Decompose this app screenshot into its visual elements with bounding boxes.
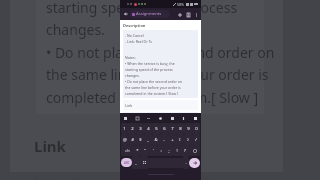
staticText: ? <box>184 148 186 154</box>
button[interactable]: Keyboard tool <box>170 116 175 121</box>
staticText: https://www.example.com/abc <box>34 173 221 180</box>
staticText: * <box>136 148 139 154</box>
staticText: • When the service is busy, the <box>125 61 175 66</box>
staticText: - No Cancel <box>125 33 144 38</box>
staticText: Description <box>123 23 146 28</box>
button[interactable]: 2 <box>128 123 136 134</box>
staticText: , <box>135 160 137 166</box>
button[interactable]: / <box>192 134 200 145</box>
staticText: 0 <box>195 126 198 132</box>
staticText: changes. <box>46 20 105 39</box>
button[interactable]: + <box>168 134 176 145</box>
staticText: ( <box>179 137 181 143</box>
staticText: # <box>131 137 134 143</box>
button[interactable]: Keyboard tool <box>181 116 186 121</box>
button[interactable]: ( <box>176 134 184 145</box>
staticText: $ <box>139 137 142 143</box>
button[interactable]: 1 <box>121 123 128 134</box>
staticText: starting speed of the process <box>46 0 238 17</box>
staticText: completed in the system.[ Slow ] <box>46 88 259 107</box>
button[interactable]: Save <box>184 10 193 19</box>
button[interactable]: , <box>132 156 140 169</box>
staticText: the same line before your order is <box>125 85 181 90</box>
button[interactable]: $ <box>136 134 144 145</box>
button[interactable]: 4 <box>144 123 152 134</box>
button[interactable]: More options <box>193 11 200 18</box>
button[interactable]: 7 <box>168 123 176 134</box>
staticText: starting speed of the process <box>125 67 173 72</box>
button[interactable]: Keyboard tool <box>123 116 128 121</box>
button[interactable]: Assignments <box>130 10 170 18</box>
button[interactable]: Back <box>122 10 130 18</box>
staticText: 5 <box>155 126 158 132</box>
button[interactable]: . <box>183 156 189 169</box>
button[interactable]: 5 <box>152 123 160 134</box>
button[interactable]: ABC <box>121 158 132 167</box>
button[interactable]: Add <box>175 10 184 19</box>
staticText: - <box>163 137 165 143</box>
button[interactable]: 6 <box>160 123 168 134</box>
button[interactable]: ; <box>165 145 173 156</box>
staticText: @ <box>123 137 127 143</box>
button[interactable]: ? <box>181 145 189 156</box>
staticText: ) <box>187 137 189 143</box>
button[interactable]: Keyboard tool <box>146 116 151 121</box>
staticText: ; <box>168 148 170 154</box>
button[interactable]: @ <box>121 134 128 145</box>
staticText: 58% <box>177 2 185 7</box>
staticText: + <box>171 137 174 143</box>
button[interactable]: =\< <box>121 145 133 156</box>
button[interactable]: Enter <box>189 158 200 168</box>
staticText: the same line before your order is <box>46 65 269 84</box>
staticText: changes. <box>125 73 140 78</box>
button[interactable]: ) <box>184 134 192 145</box>
button[interactable]: 0 <box>192 123 200 134</box>
staticText: - Link: Reel Dr Ts <box>125 39 152 44</box>
staticText: / <box>195 137 197 143</box>
staticText: 6 <box>163 126 166 132</box>
button[interactable]: Emoji <box>140 156 148 169</box>
button[interactable]: Keyboard tool <box>193 116 198 121</box>
staticText: 1 <box>123 126 126 132</box>
staticText: Link <box>125 103 133 108</box>
button[interactable]: # <box>128 134 136 145</box>
button[interactable]: & <box>152 134 160 145</box>
button[interactable]: ! <box>173 145 181 156</box>
staticText: Notes: <box>125 55 136 60</box>
staticText: 9 <box>187 126 190 132</box>
button[interactable]: 3 <box>136 123 144 134</box>
staticText: ABC <box>124 161 130 165</box>
staticText: ' <box>153 148 154 154</box>
staticText: =\< <box>125 149 130 153</box>
button[interactable]: Keyboard tool <box>158 116 163 121</box>
staticText: 4 <box>147 126 150 132</box>
staticText: Link <box>34 136 66 156</box>
staticText: • Do not place the second order on <box>46 43 275 62</box>
staticText: " <box>144 148 146 154</box>
button[interactable]: ' <box>149 145 157 156</box>
button[interactable]: : <box>157 145 165 156</box>
staticText: Assignments <box>136 11 162 17</box>
staticText: . <box>185 160 187 166</box>
staticText: 3 <box>139 126 142 132</box>
button[interactable]: - <box>160 134 168 145</box>
staticText: 7 <box>171 126 174 132</box>
staticText: 8 <box>179 126 182 132</box>
button[interactable]: " <box>141 145 149 156</box>
staticText: _ <box>147 137 149 143</box>
button[interactable]: * <box>133 145 141 156</box>
staticText: : <box>160 148 162 154</box>
button[interactable]: _ <box>144 134 152 145</box>
button[interactable]: Backspace <box>189 145 200 156</box>
staticText: completed in the system.[ Slow ] <box>125 91 179 95</box>
button[interactable]: 9 <box>184 123 192 134</box>
staticText: • Do not place the second order on <box>125 79 183 84</box>
button[interactable]: Keyboard tool <box>135 116 140 121</box>
staticText: 2 <box>131 126 134 132</box>
staticText: & <box>154 137 158 143</box>
staticText: ! <box>176 148 178 154</box>
button[interactable]: 8 <box>176 123 184 134</box>
